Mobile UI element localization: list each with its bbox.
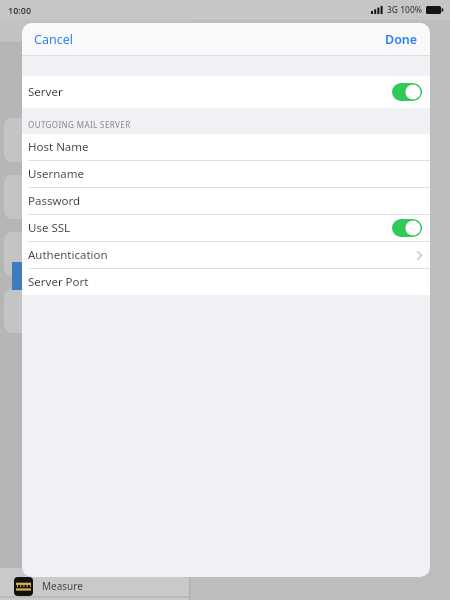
staticText: Server [28,84,63,100]
button[interactable]: Cancel [26,26,81,53]
other: Use SSL toggle, on [392,219,422,237]
staticText: Host Name [28,139,89,155]
staticText: OUTGOING MAIL SERVER [28,119,131,130]
button[interactable]: Password [22,188,430,214]
staticText: Server Port [28,274,89,290]
staticText: Use SSL [28,220,71,236]
button[interactable]: Authentication [22,242,430,268]
button[interactable]: Server [22,76,430,108]
staticText: Cancel [34,31,73,48]
button[interactable]: Server Port [22,269,430,295]
staticText: Password [28,193,81,209]
staticText: Authentication [28,247,108,263]
other: Server toggle, on [392,83,422,101]
button[interactable]: Username [22,161,430,187]
staticText: 3G 100% [387,4,423,16]
button[interactable]: Done [377,26,426,53]
button[interactable]: Use SSL [22,215,430,241]
button[interactable]: Host Name [22,134,430,160]
staticText: Done [385,31,418,48]
button[interactable]: Measure [14,575,176,597]
staticText: Username [28,166,84,182]
staticText: 10:00 [8,4,32,16]
staticText: Measure [42,579,83,593]
